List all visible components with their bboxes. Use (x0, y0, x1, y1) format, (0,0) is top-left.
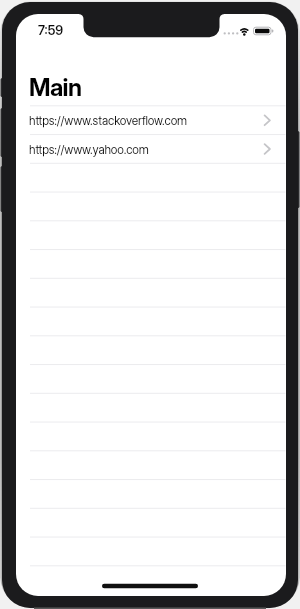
button[interactable]: https://www.stackoverflow.com (16, 106, 286, 135)
staticText: 7:59 (38, 22, 64, 38)
staticText: Main (29, 73, 82, 102)
staticText: https://www.stackoverflow.com (29, 113, 188, 128)
button[interactable]: https://www.yahoo.com (16, 135, 286, 164)
staticText: https://www.yahoo.com (29, 142, 149, 157)
